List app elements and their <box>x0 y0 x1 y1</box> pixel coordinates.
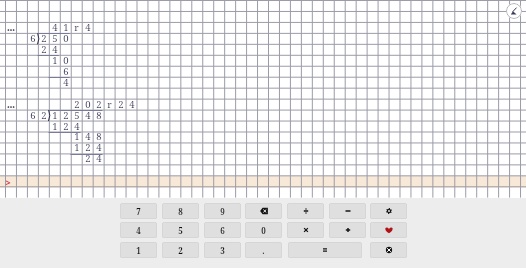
staticText: 0 <box>85 98 91 110</box>
button[interactable]: Backspace <box>245 203 282 219</box>
staticText: 9 <box>220 206 225 217</box>
staticText: 6 <box>220 225 225 236</box>
staticText: 3 <box>220 245 225 256</box>
staticText: 4 <box>74 120 80 132</box>
staticText: 7 <box>136 206 141 217</box>
button[interactable]: 8 <box>162 203 199 219</box>
button[interactable]: Settings <box>370 203 407 219</box>
staticText: 6 <box>30 32 36 44</box>
staticText: 2 <box>85 152 91 164</box>
button[interactable]: Multiply <box>287 222 324 238</box>
staticText: 4 <box>52 43 58 55</box>
staticText: 4 <box>96 141 102 153</box>
staticText: 2 <box>118 98 124 110</box>
staticText: 8 <box>96 130 102 142</box>
staticText: 4 <box>52 21 58 33</box>
staticText: 4 <box>136 225 141 236</box>
staticText: 5 <box>52 32 58 44</box>
staticText: 2 <box>41 43 47 55</box>
staticText: 1 <box>52 120 58 132</box>
staticText: 2 <box>178 245 183 256</box>
staticText: 1 <box>74 141 80 153</box>
button[interactable]: 1 <box>120 242 157 258</box>
staticText: 4 <box>85 21 91 33</box>
button[interactable]: Minus <box>329 203 366 219</box>
staticText: 1 <box>63 21 69 33</box>
staticText: 4 <box>85 130 91 142</box>
button[interactable]: 3 <box>204 242 241 258</box>
staticText: . <box>262 245 265 256</box>
staticText: r <box>107 98 112 110</box>
button[interactable]: 6 <box>204 222 241 238</box>
staticText: 1 <box>52 109 58 121</box>
staticText: 4 <box>129 98 135 110</box>
staticText: 5 <box>178 225 183 236</box>
staticText: 0 <box>261 225 266 236</box>
button[interactable]: 9 <box>204 203 241 219</box>
staticText: 2 <box>74 98 80 110</box>
staticText: 4 <box>96 152 102 164</box>
button[interactable]: 4 <box>120 222 157 238</box>
button[interactable]: 2 <box>162 242 199 258</box>
staticText: 6 <box>63 65 69 77</box>
staticText: > <box>5 176 11 187</box>
staticText: 2 <box>96 98 102 110</box>
staticText: 0 <box>63 32 69 44</box>
button[interactable]: Plus <box>329 222 366 238</box>
button[interactable]: Clear all <box>506 3 522 19</box>
button[interactable]: 7 <box>120 203 157 219</box>
button[interactable]: Divide <box>287 203 324 219</box>
button[interactable]: . <box>245 242 282 258</box>
staticText: r <box>74 21 79 33</box>
staticText: 2 <box>41 32 47 44</box>
staticText: 4 <box>63 76 69 88</box>
staticText: 1 <box>52 54 58 66</box>
staticText: 2 <box>41 109 47 121</box>
staticText: 0 <box>63 54 69 66</box>
staticText: 1 <box>136 245 141 256</box>
button[interactable]: Clear all <box>370 242 407 258</box>
button[interactable]: 0 <box>245 222 282 238</box>
staticText: 8 <box>178 206 183 217</box>
staticText: 4 <box>85 109 91 121</box>
staticText: 5 <box>74 109 80 121</box>
staticText: 8 <box>96 109 102 121</box>
staticText: 1 <box>74 130 80 142</box>
button[interactable]: 5 <box>162 222 199 238</box>
staticText: 2 <box>63 109 69 121</box>
staticText: 2 <box>63 120 69 132</box>
staticText: 6 <box>30 109 36 121</box>
button[interactable]: Equals <box>288 242 362 258</box>
staticText: 2 <box>85 141 91 153</box>
button[interactable]: Favourite <box>370 222 407 238</box>
